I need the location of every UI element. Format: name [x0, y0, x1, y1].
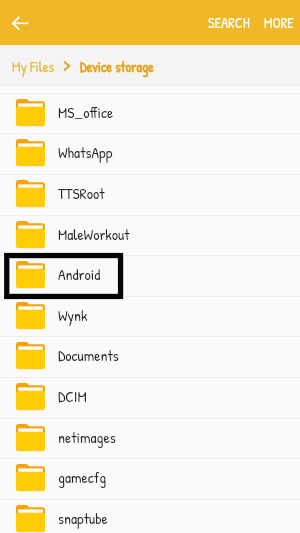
button[interactable]: snaptube — [0, 499, 300, 533]
staticText: DCIM — [58, 386, 87, 407]
button[interactable]: My Files — [12, 57, 54, 77]
button[interactable]: gamecfg — [0, 458, 300, 499]
staticText: MS_office — [58, 102, 114, 123]
button[interactable]: WhatsApp — [0, 133, 300, 174]
staticText: Wynk — [58, 305, 88, 326]
button[interactable]: Device storage — [80, 57, 154, 76]
staticText: My Files — [12, 57, 54, 77]
button[interactable]: MS_office — [0, 93, 300, 134]
staticText: WhatsApp — [58, 142, 113, 163]
button[interactable]: Wynk — [0, 296, 300, 337]
staticText: gamecfg — [58, 467, 107, 488]
button[interactable]: TTSRoot — [0, 174, 300, 215]
button[interactable]: Documents — [0, 336, 300, 377]
button[interactable]: DCIM — [0, 377, 300, 418]
staticText: TTSRoot — [58, 183, 105, 204]
button[interactable]: MORE — [258, 5, 300, 40]
button[interactable]: netimages — [0, 418, 300, 459]
staticText: Documents — [58, 345, 119, 366]
staticText: netimages — [58, 427, 116, 448]
staticText: MaleWorkout — [58, 224, 130, 245]
staticText: MORE — [264, 13, 294, 32]
button[interactable]: SEARCH — [202, 5, 256, 40]
button[interactable]: Android — [0, 255, 300, 296]
staticText: snaptube — [58, 508, 108, 529]
staticText: Device storage — [80, 57, 154, 76]
button[interactable]: MaleWorkout — [0, 215, 300, 256]
staticText: SEARCH — [208, 13, 250, 32]
button[interactable]: Back — [6, 9, 34, 37]
staticText: Android — [58, 264, 101, 285]
